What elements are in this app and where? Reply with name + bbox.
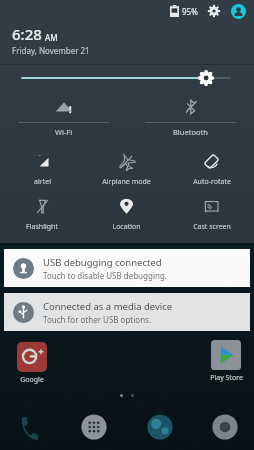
- button[interactable]: Location: [84, 194, 169, 235]
- staticText: Friday, November 21: [12, 45, 90, 56]
- staticText: Google: [20, 375, 44, 385]
- staticText: 6:28: [12, 24, 42, 44]
- staticText: airtel: [34, 177, 51, 187]
- button[interactable]: Play Store: [204, 340, 248, 383]
- button[interactable]: Browser: [145, 412, 175, 442]
- staticText: Airplane mode: [102, 177, 151, 187]
- staticText: Flashlight: [26, 222, 58, 232]
- button[interactable]: Auto‑rotate: [169, 149, 254, 190]
- button[interactable]: Airplane mode: [84, 149, 169, 190]
- button[interactable]: Flashlight: [0, 194, 84, 235]
- staticText: Location: [112, 222, 141, 232]
- staticText: Wi‑Fi: [55, 127, 73, 137]
- staticText: USB debugging connected: [43, 256, 162, 269]
- button[interactable]: USB debugging connected: [4, 249, 250, 287]
- staticText: Touch for other USB options.: [43, 314, 152, 325]
- button[interactable]: User: [231, 4, 246, 19]
- button[interactable]: airtel: [0, 149, 84, 190]
- staticText: Connected as a media device: [43, 300, 173, 313]
- button[interactable]: Connected as a media device: [4, 293, 250, 331]
- button[interactable]: Bluetooth: [127, 93, 254, 141]
- button[interactable]: Cast screen: [169, 194, 254, 235]
- staticText: Touch to disable USB debugging.: [43, 270, 167, 281]
- staticText: 95%: [182, 6, 198, 17]
- button[interactable]: Camera: [210, 412, 240, 442]
- button[interactable]: All apps: [79, 412, 109, 442]
- staticText: Auto‑rotate: [193, 177, 231, 187]
- staticText: Play Store: [210, 373, 243, 383]
- staticText: Cast screen: [193, 222, 231, 232]
- button[interactable]: Settings: [207, 4, 221, 18]
- button[interactable]: Brightness: [0, 65, 254, 91]
- staticText: AM: [45, 32, 58, 43]
- staticText: Bluetooth: [173, 127, 208, 137]
- button[interactable]: Google: [10, 342, 54, 385]
- button[interactable]: Wi‑Fi: [0, 93, 127, 141]
- button[interactable]: Phone: [14, 412, 44, 442]
